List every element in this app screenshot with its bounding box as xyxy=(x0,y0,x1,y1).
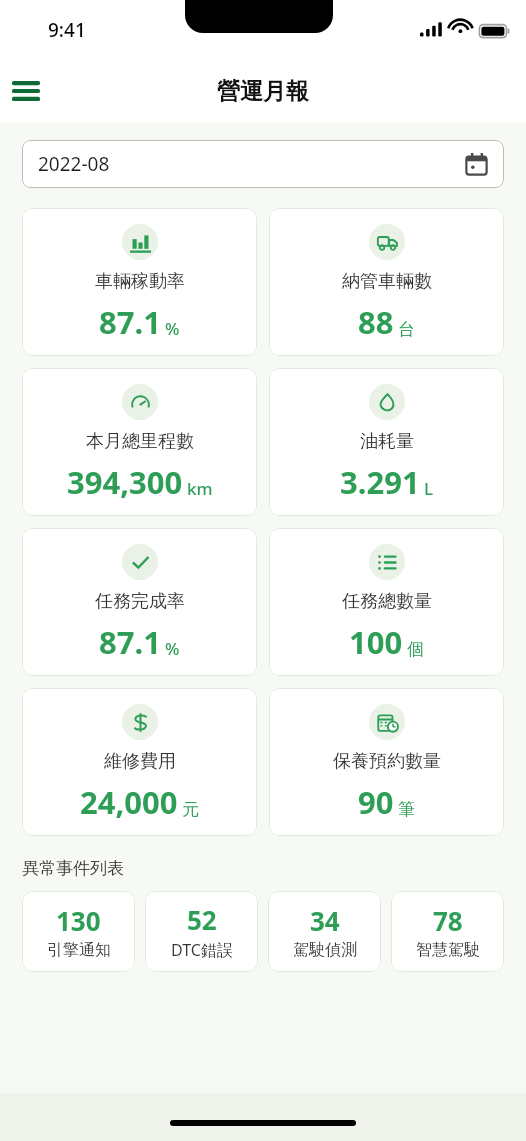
staticText: 9:41 xyxy=(48,17,86,43)
button[interactable]: 車輛稼動率 xyxy=(22,208,257,356)
button[interactable]: 保養預約數量 xyxy=(269,688,504,836)
staticText: 維修費用 xyxy=(104,750,176,773)
staticText: 394,300 xyxy=(67,461,183,503)
staticText: 34 xyxy=(310,903,340,938)
staticText: 油耗量 xyxy=(360,430,414,453)
staticText: km xyxy=(187,477,213,500)
button[interactable]: 78 xyxy=(391,891,504,972)
staticText: 100 xyxy=(349,621,403,663)
staticText: 個 xyxy=(407,639,424,660)
staticText: 130 xyxy=(56,903,101,938)
button[interactable]: 任務總數量 xyxy=(269,528,504,676)
button[interactable]: 油耗量 xyxy=(269,368,504,516)
button[interactable]: Menu xyxy=(4,69,48,113)
staticText: 任務完成率 xyxy=(95,590,185,613)
staticText: 台 xyxy=(398,319,415,340)
button[interactable]: 52 xyxy=(145,891,258,972)
staticText: 87.1 xyxy=(99,301,161,343)
staticText: % xyxy=(165,637,180,660)
staticText: 78 xyxy=(433,903,463,938)
staticText: 筆 xyxy=(398,799,415,820)
button[interactable]: 本月總里程數 xyxy=(22,368,257,516)
staticText: L xyxy=(424,477,434,500)
staticText: % xyxy=(165,317,180,340)
staticText: 52 xyxy=(187,902,217,937)
staticText: 90 xyxy=(358,781,394,823)
staticText: 駕駛偵測 xyxy=(293,940,357,960)
staticText: 智慧駕駛 xyxy=(416,940,480,960)
staticText: 87.1 xyxy=(99,621,161,663)
staticText: 3.291 xyxy=(340,461,420,503)
staticText: 引擎通知 xyxy=(47,940,111,960)
button[interactable]: 納管車輛數 xyxy=(269,208,504,356)
staticText: 營運月報 xyxy=(217,77,309,106)
staticText: 2022-08 xyxy=(38,151,110,177)
staticText: 本月總里程數 xyxy=(86,430,194,453)
staticText: 元 xyxy=(182,799,199,820)
button[interactable]: 34 xyxy=(268,891,381,972)
staticText: DTC錯誤 xyxy=(171,939,233,961)
button[interactable]: 2022-08 xyxy=(22,140,504,188)
button[interactable]: 任務完成率 xyxy=(22,528,257,676)
staticText: 保養預約數量 xyxy=(333,750,441,773)
staticText: 車輛稼動率 xyxy=(95,270,185,293)
staticText: 納管車輛數 xyxy=(342,270,432,293)
button[interactable]: 維修費用 xyxy=(22,688,257,836)
staticText: 88 xyxy=(358,301,394,343)
staticText: 24,000 xyxy=(80,781,178,823)
button[interactable]: 130 xyxy=(22,891,135,972)
staticText: 任務總數量 xyxy=(342,590,432,613)
staticText: 異常事件列表 xyxy=(22,858,124,879)
